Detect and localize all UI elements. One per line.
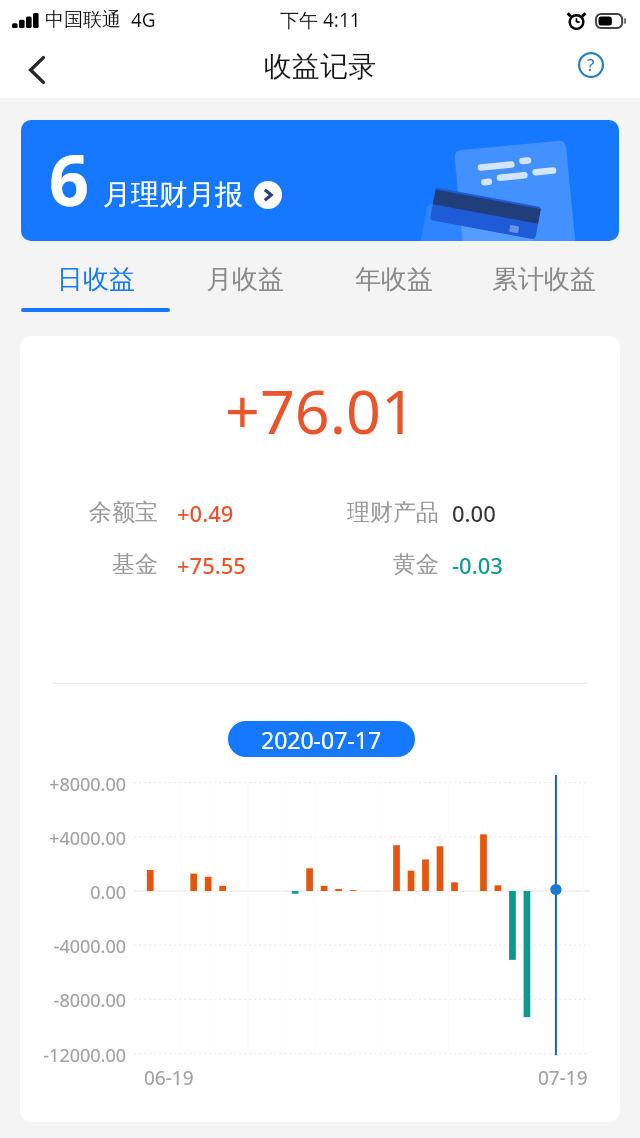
staticText: -8000.00 — [20, 988, 126, 1013]
staticText: 月理财月报 — [103, 177, 243, 212]
staticText: 07-19 — [538, 1065, 588, 1091]
staticText: +4000.00 — [20, 826, 126, 851]
staticText: 余额宝 — [40, 498, 158, 527]
staticText: +8000.00 — [20, 772, 126, 797]
button[interactable]: 2020-07-17 — [228, 721, 415, 757]
staticText: -0.03 — [452, 550, 503, 580]
staticText: -12000.00 — [20, 1043, 126, 1068]
staticText: 0.00 — [20, 880, 126, 905]
staticText: 累计收益 — [492, 263, 596, 296]
staticText: +76.01 — [225, 369, 416, 452]
button[interactable]: 月收益 — [170, 256, 319, 312]
button[interactable]: 累计收益 — [469, 256, 619, 312]
staticText: 日收益 — [57, 263, 135, 296]
staticText: ? — [587, 53, 595, 76]
button[interactable]: 6 — [21, 120, 619, 241]
staticText: 理财产品 — [301, 498, 439, 527]
button[interactable]: 日收益 — [21, 256, 170, 312]
staticText: +75.55 — [177, 550, 246, 580]
button[interactable]: 年收益 — [319, 256, 469, 312]
staticText: 中国联通 — [45, 8, 121, 32]
staticText: 6 — [49, 131, 90, 226]
staticText: +0.49 — [177, 498, 234, 528]
staticText: 月收益 — [206, 263, 284, 296]
staticText: 0.00 — [452, 498, 496, 528]
staticText: 黄金 — [301, 550, 439, 579]
staticText: 4G — [131, 7, 156, 33]
button[interactable]: Back — [14, 47, 60, 93]
staticText: -4000.00 — [20, 934, 126, 959]
staticText: 收益记录 — [264, 49, 376, 84]
staticText: 下午 4:11 — [280, 7, 361, 33]
staticText: 06-19 — [144, 1065, 194, 1091]
staticText: 年收益 — [355, 263, 433, 296]
staticText: 2020-07-17 — [261, 724, 382, 755]
button[interactable]: Help — [576, 50, 606, 80]
staticText: 基金 — [40, 550, 158, 579]
